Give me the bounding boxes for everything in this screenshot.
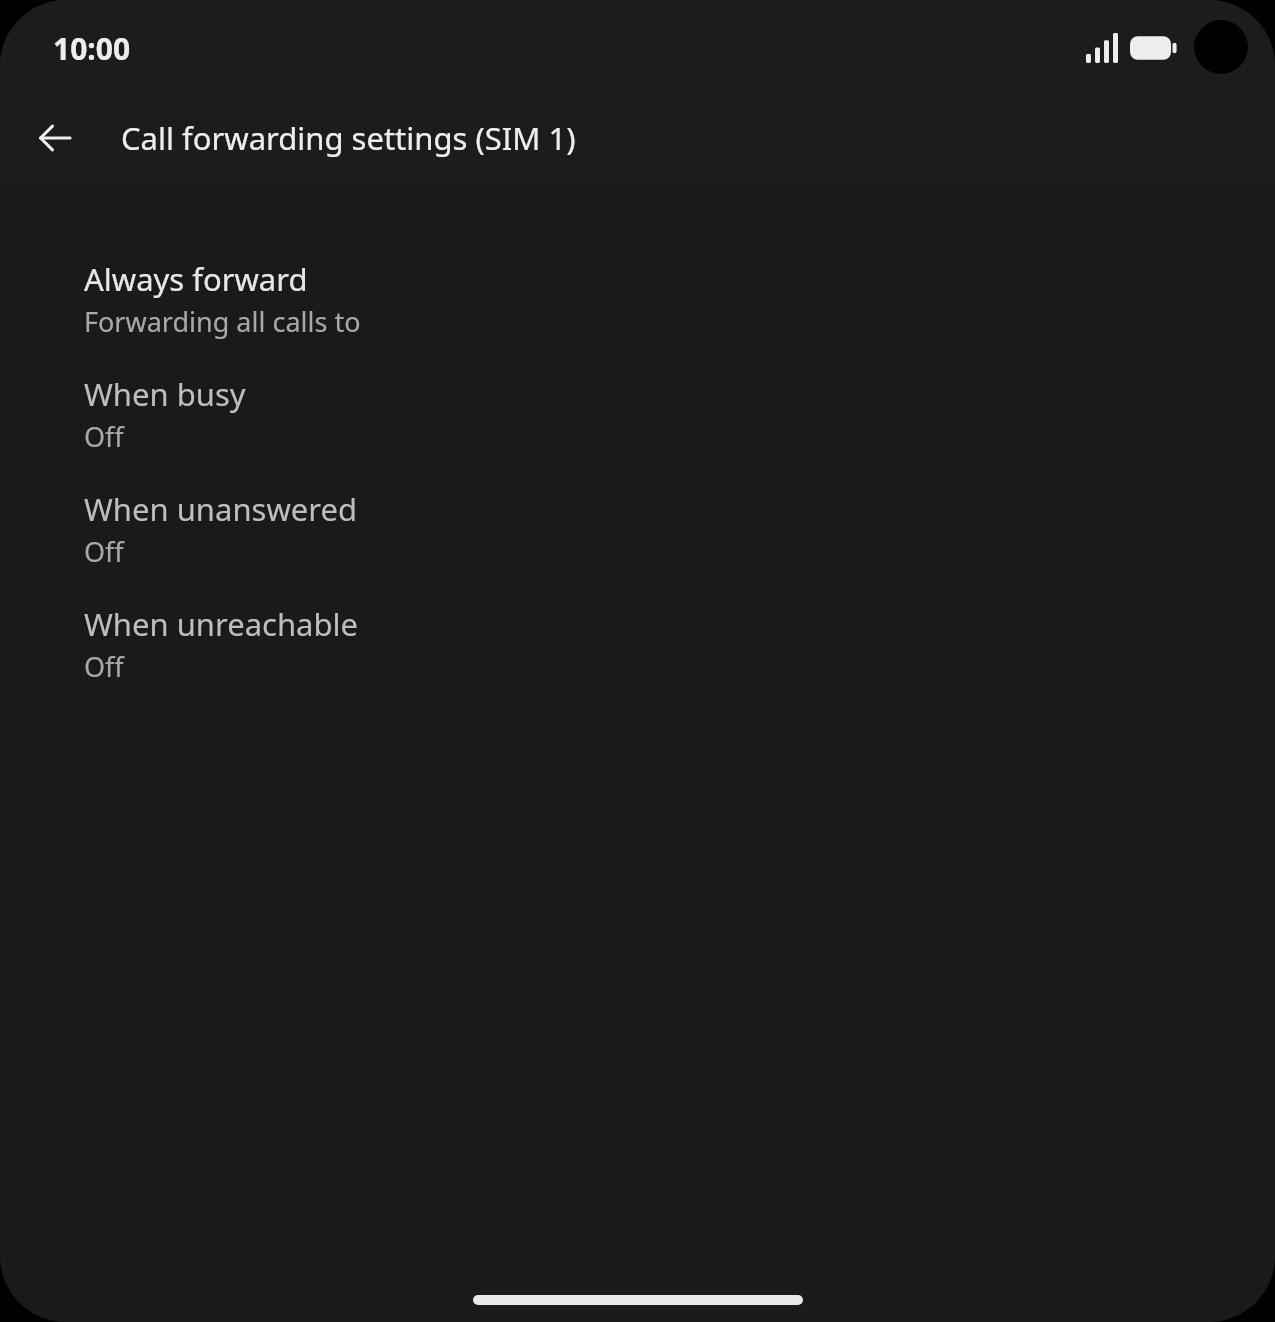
staticText: Off [84,533,124,570]
staticText: Call forwarding settings (SIM 1) [121,117,576,159]
staticText: Forwarding all calls to [84,303,361,340]
other: Battery full [1130,33,1178,63]
button[interactable]: Always forward [0,254,1275,348]
button[interactable]: When unreachable [0,599,1275,693]
button[interactable]: Navigate up [20,103,90,173]
other: Home gesture handle [473,1295,803,1305]
other: Mobile signal full [1086,33,1118,63]
staticText: When busy [84,373,246,415]
staticText: Off [84,418,124,455]
staticText: 10:00 [53,28,131,69]
button[interactable]: When unanswered [0,484,1275,578]
staticText: Always forward [84,258,308,300]
staticText: Off [84,648,124,685]
button[interactable]: When busy [0,369,1275,463]
staticText: When unanswered [84,488,357,530]
staticText: When unreachable [84,603,359,645]
